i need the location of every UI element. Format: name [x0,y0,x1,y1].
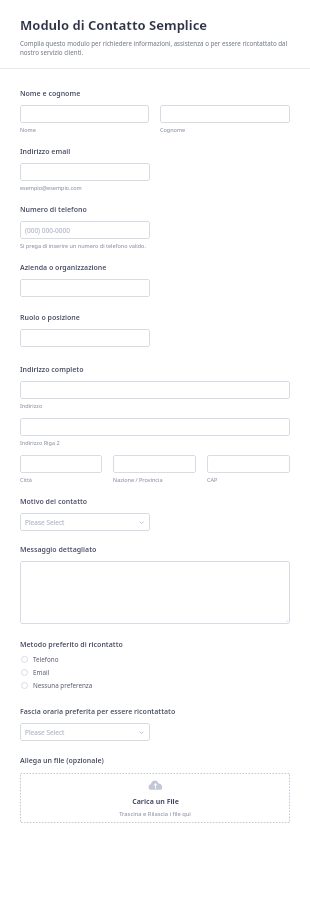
staticText: Numero di telefono [20,205,87,215]
staticText: Messaggio dettagliato [20,545,97,555]
other: Open dropdown [138,519,145,526]
staticText: Indirizzo [20,402,43,409]
staticText: CAP [207,476,218,483]
button[interactable] [20,381,290,399]
button[interactable] [113,455,196,473]
staticText: Please Select [25,518,65,527]
staticText: Please Select [25,728,65,737]
button[interactable]: Email [20,666,290,679]
staticText: Telefono [33,655,59,664]
staticText: Nessuna preferenza [33,681,93,690]
button[interactable]: Please Select [20,723,150,741]
button[interactable]: (000) 000-0000 [20,221,150,239]
staticText: Allega un file (opzionale) [20,756,104,766]
button[interactable]: Telefono [20,653,290,666]
staticText: Modulo di Contatto Semplice [20,16,208,34]
button[interactable] [20,418,290,436]
staticText: Nome e cognome [20,89,81,99]
staticText: Ruolo o posizione [20,313,80,323]
button[interactable] [20,279,150,297]
staticText: Città [20,476,32,483]
staticText: Cognome [160,126,186,133]
button[interactable]: Nessuna preferenza [20,679,290,692]
staticText: Nome [20,126,36,133]
staticText: Fascia oraria preferita per essere ricon… [20,707,176,717]
staticText: Si prega di inserire un numero di telefo… [20,242,146,249]
staticText: esempio@esempio.com [20,184,82,191]
button[interactable] [20,163,150,181]
button[interactable] [20,561,290,624]
button[interactable] [20,105,149,123]
staticText: Email [33,668,50,677]
staticText: Indirizzo Riga 2 [20,439,60,446]
staticText: (000) 000-0000 [25,226,70,235]
staticText: Carica un File [132,797,179,807]
staticText: Metodo preferito di ricontatto [20,640,123,650]
button[interactable]: Please Select [20,513,150,531]
button[interactable]: Carica un File [20,773,290,823]
staticText: Indirizzo email [20,147,71,157]
button[interactable] [20,329,150,347]
staticText: Azienda o organizzazione [20,263,107,273]
other: Open dropdown [138,729,145,736]
staticText: Trascina e Rilascia i file qui [119,810,191,818]
staticText: Compila questo modulo per richiedere inf… [20,39,290,57]
staticText: Indirizzo completo [20,365,84,375]
button[interactable] [207,455,290,473]
staticText: Motivo del contatto [20,497,88,507]
button[interactable] [160,105,290,123]
staticText: Nazione / Provincia [113,476,163,483]
button[interactable] [20,455,102,473]
